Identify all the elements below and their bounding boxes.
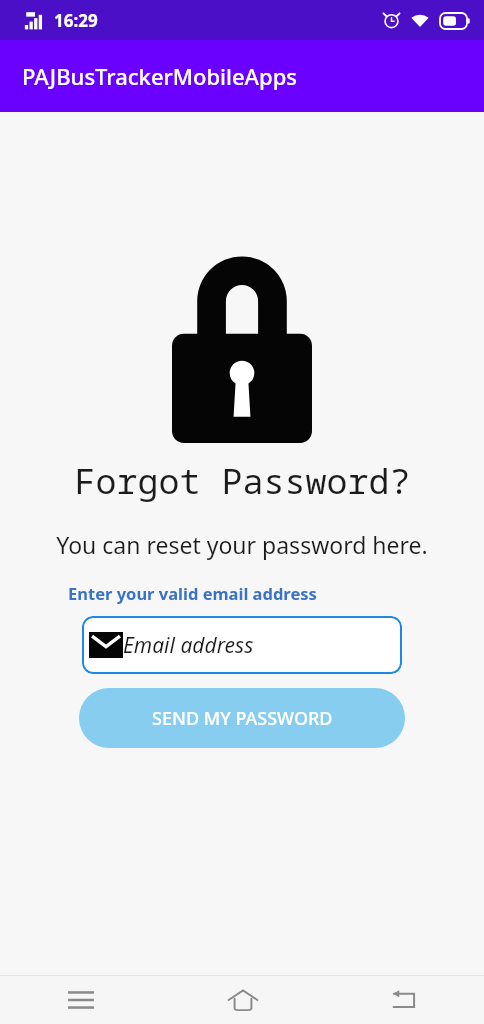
staticText: Email address bbox=[123, 631, 254, 660]
staticText: SEND MY PASSWORD bbox=[152, 706, 333, 731]
button[interactable]: Back bbox=[323, 976, 484, 1024]
staticText: You can reset your password here. bbox=[56, 529, 428, 560]
button[interactable]: Recent apps bbox=[0, 976, 162, 1024]
button[interactable]: Email address bbox=[82, 616, 402, 674]
staticText: Forgot Password? bbox=[74, 457, 411, 505]
staticText: 16:29 bbox=[54, 9, 98, 32]
button[interactable]: SEND MY PASSWORD bbox=[79, 688, 405, 748]
staticText: Enter your valid email address bbox=[68, 582, 317, 604]
button[interactable]: Home bbox=[162, 976, 323, 1024]
staticText: PAJBusTrackerMobileApps bbox=[22, 61, 298, 91]
